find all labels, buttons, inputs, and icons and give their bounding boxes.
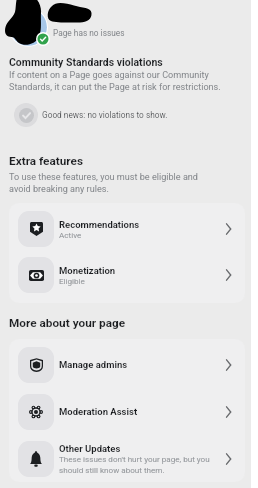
staticText: These issues don't hurt your page, but y… [59, 454, 213, 475]
staticText: Extra features [9, 154, 84, 168]
staticText: Moderation Assist [59, 406, 138, 417]
staticText: If content on a Page goes against our Co… [9, 70, 221, 92]
staticText: Page has no issues [53, 28, 125, 38]
staticText: Recommendations [59, 219, 140, 230]
staticText: Other Updates [59, 443, 121, 454]
staticText: Manage admins [59, 359, 128, 370]
button[interactable]: No violations [0, 102, 251, 128]
button[interactable]: Manage admins [9, 341, 245, 388]
staticText: Good news: no violations to show. [42, 110, 168, 120]
button[interactable]: Page profile photo [0, 0, 56, 56]
button[interactable]: Moderation Assist [9, 388, 245, 435]
button[interactable]: Recommendations [9, 206, 245, 252]
staticText: Active [59, 230, 82, 239]
button[interactable]: Other Updates [9, 435, 245, 482]
staticText: To use these features, you must be eligi… [9, 172, 221, 194]
staticText: Community Standards violations [9, 56, 163, 68]
staticText: Eligible [59, 276, 85, 285]
staticText: More about your page [9, 316, 126, 330]
button[interactable]: Monetization [9, 252, 245, 298]
staticText: Monetization [59, 265, 116, 276]
